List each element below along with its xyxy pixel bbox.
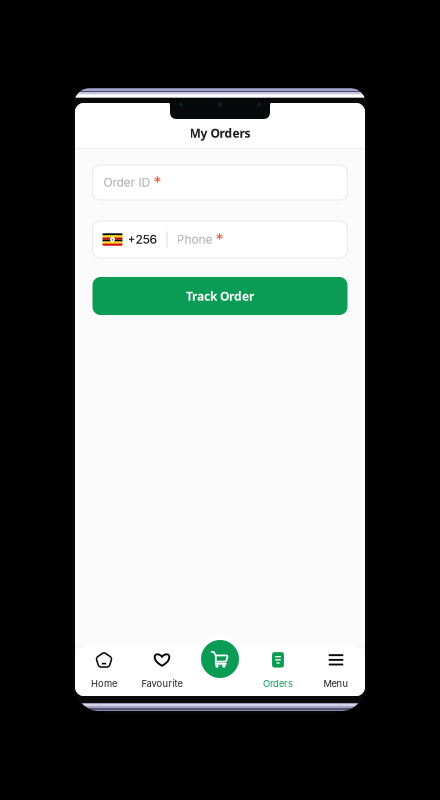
staticText: Phone	[176, 232, 215, 247]
button[interactable]: Track Order	[92, 277, 347, 315]
staticText: Menu	[323, 678, 348, 689]
staticText: Favourite	[141, 678, 182, 689]
staticText: *	[153, 173, 161, 192]
staticText: +256	[127, 232, 157, 247]
staticText: My Orders	[189, 125, 250, 141]
staticText: Track Order	[186, 288, 254, 304]
staticText: Orders	[263, 678, 293, 689]
button[interactable]: Favourite	[133, 646, 191, 696]
button[interactable]: Orders	[249, 646, 307, 696]
button[interactable]: Cart	[197, 636, 243, 682]
staticText: Order ID	[103, 175, 153, 190]
button[interactable]: Home	[75, 646, 133, 696]
staticText: Home	[91, 678, 117, 689]
staticText: *	[215, 230, 223, 249]
button[interactable]: Menu	[307, 646, 365, 696]
